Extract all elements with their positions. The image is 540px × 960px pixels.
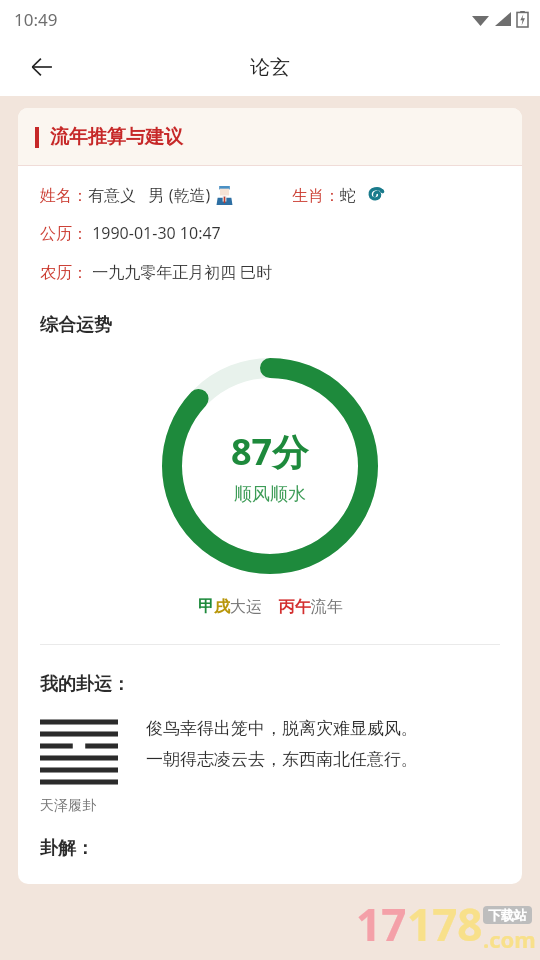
staticText: 甲戌大运 丙午流年 (198, 595, 343, 617)
staticText: 10:49 (14, 8, 58, 31)
staticText: 俊鸟幸得出笼中，脱离灾难显威风。 (146, 718, 418, 739)
staticText: 我的卦运： (40, 673, 130, 696)
staticText: 论玄 (250, 55, 290, 80)
staticText: 下载站 (488, 907, 527, 923)
staticText: 姓名：有意义 男 (乾造) (40, 184, 215, 206)
staticText: 天泽履卦 (40, 797, 96, 815)
staticText: 农历： 一九九零年正月初四 巳时 (40, 261, 273, 283)
staticText: 顺风顺水 (234, 483, 306, 506)
staticText: 公历： 1990-01-30 10:47 (40, 222, 221, 244)
staticText: 87分 (231, 427, 309, 476)
staticText: 卦解： (40, 837, 94, 860)
staticText: 178 (407, 894, 483, 954)
staticText: .com (483, 924, 536, 954)
button[interactable]: Back (20, 45, 64, 89)
staticText: 流年推算与建议 (50, 125, 183, 149)
staticText: 一朝得志凌云去，东西南北任意行。 (146, 749, 418, 770)
staticText: 综合运势 (40, 314, 112, 337)
staticText: 17 (356, 894, 407, 954)
staticText: 生肖：蛇 (292, 184, 361, 206)
